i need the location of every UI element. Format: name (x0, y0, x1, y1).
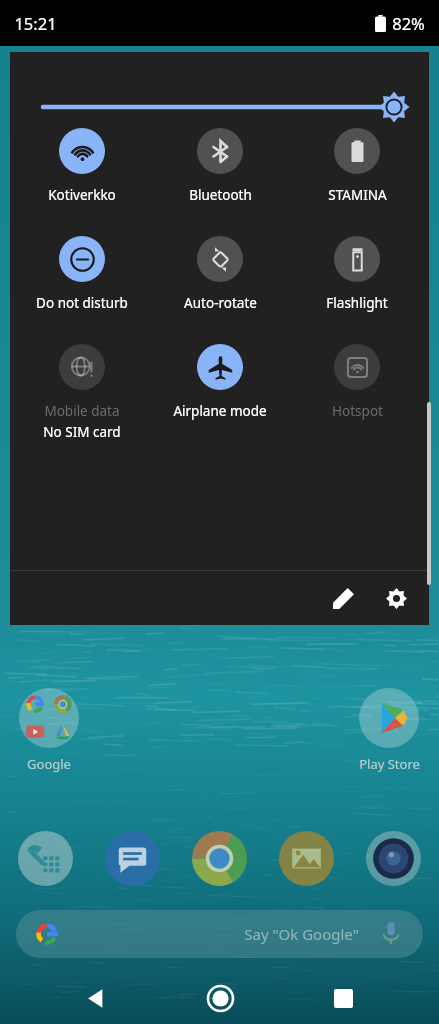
staticText: Play Store (359, 755, 420, 773)
staticText: Kotiverkko (48, 186, 116, 204)
staticText: Airplane mode (173, 402, 267, 420)
staticText: Mobile data (44, 402, 120, 420)
button[interactable]: Brightness (10, 52, 429, 128)
staticText: Auto-rotate (184, 294, 257, 312)
staticText: Flashlight (326, 294, 388, 312)
button[interactable]: Google (16, 688, 82, 773)
staticText: Say "Ok Google" (244, 924, 359, 944)
staticText: STAMINA (328, 186, 387, 204)
button[interactable]: Recents (316, 972, 370, 1024)
button[interactable]: Mobile data (17, 344, 147, 441)
staticText: No SIM card (43, 423, 121, 441)
staticText: Bluetooth (189, 186, 252, 204)
button[interactable]: Kotiverkko (17, 128, 147, 204)
button[interactable]: Settings (373, 575, 419, 621)
button[interactable]: Play Store (356, 688, 422, 773)
button[interactable]: Airplane mode (155, 344, 285, 420)
button[interactable]: Chrome (192, 831, 247, 886)
button[interactable]: Home (193, 972, 247, 1024)
button[interactable]: Bluetooth (155, 128, 285, 204)
staticText: Hotspot (332, 402, 383, 420)
button[interactable]: Messages (105, 831, 160, 886)
button[interactable]: Flashlight (292, 236, 422, 312)
button[interactable]: Hotspot (292, 344, 422, 420)
button[interactable]: Photos (279, 831, 334, 886)
button[interactable]: Do not disturb (17, 236, 147, 312)
button[interactable]: Edit tiles (320, 575, 366, 621)
button[interactable]: STAMINA (292, 128, 422, 204)
staticText: Google (27, 755, 71, 773)
staticText: 15:21 (14, 12, 57, 34)
button[interactable]: Say "Ok Google" (16, 910, 423, 958)
button[interactable]: Phone (18, 831, 73, 886)
button[interactable]: Camera (366, 831, 421, 886)
staticText: Do not disturb (36, 294, 128, 312)
staticText: 82% (392, 12, 425, 34)
button[interactable]: Back (69, 972, 123, 1024)
button[interactable]: Auto-rotate (155, 236, 285, 312)
